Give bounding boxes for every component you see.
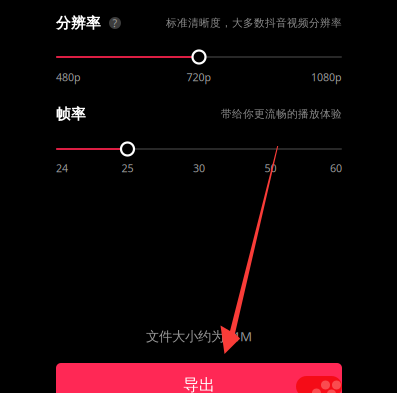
staticText: 导出: [183, 375, 215, 393]
staticText: 帧率: [56, 105, 86, 123]
staticText: 标准清晰度，大多数抖音视频分辨率: [166, 16, 342, 29]
staticText: 带给你更流畅的播放体验: [221, 107, 342, 120]
staticText: 1080p: [311, 70, 342, 84]
staticText: 60: [330, 161, 342, 175]
staticText: 25: [121, 161, 133, 175]
staticText: 文件大小约为24M: [146, 327, 252, 345]
staticText: 480p: [56, 70, 81, 84]
staticText: ?: [112, 16, 117, 30]
staticText: 24: [56, 161, 68, 175]
staticText: 720p: [186, 70, 211, 84]
staticText: 分辨率: [56, 14, 101, 32]
staticText: 50: [264, 161, 276, 175]
button[interactable]: 导出: [56, 363, 342, 393]
staticText: 30: [193, 161, 205, 175]
